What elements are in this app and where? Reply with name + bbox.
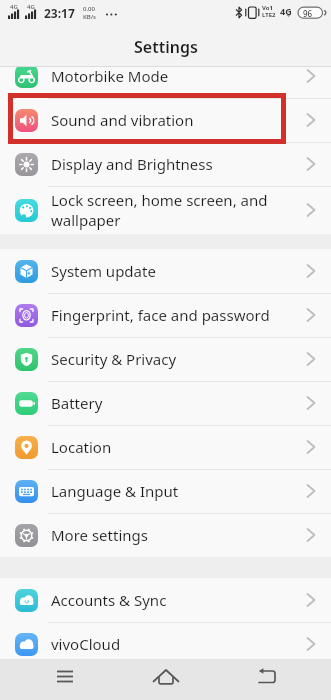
button[interactable]: Motorbike Mode bbox=[0, 54, 331, 98]
staticText: Vo1 bbox=[262, 4, 273, 12]
staticText: 96 bbox=[303, 8, 313, 19]
button[interactable]: Fingerprint, face and password bbox=[0, 293, 331, 337]
staticText: More settings bbox=[51, 525, 148, 545]
button[interactable] bbox=[236, 659, 296, 700]
staticText: 4G bbox=[10, 3, 18, 11]
staticText: Settings bbox=[134, 36, 198, 58]
button[interactable]: System update bbox=[0, 249, 331, 293]
staticText: vivoCloud bbox=[51, 634, 121, 654]
staticText: wallpaper bbox=[51, 210, 121, 230]
staticText: Sound and vibration bbox=[51, 110, 194, 130]
staticText: KB/s bbox=[83, 13, 96, 21]
staticText: Motorbike Mode bbox=[51, 66, 169, 86]
staticText: Accounts & Sync bbox=[51, 590, 167, 610]
staticText: 0.00 bbox=[83, 5, 95, 13]
staticText: Fingerprint, face and password bbox=[51, 305, 270, 325]
button[interactable]: Battery bbox=[0, 381, 331, 425]
button[interactable]: Sound and vibration bbox=[0, 98, 331, 142]
button[interactable]: Location bbox=[0, 425, 331, 469]
button[interactable]: Display and Brightness bbox=[0, 142, 331, 186]
button[interactable]: Lock screen, home screen, and bbox=[0, 186, 331, 234]
staticText: 4G bbox=[27, 3, 35, 11]
staticText: LTE2 bbox=[262, 11, 276, 19]
button[interactable]: Security & Privacy bbox=[0, 337, 331, 381]
button[interactable]: vivoCloud bbox=[0, 622, 331, 666]
button[interactable]: Language & Input bbox=[0, 469, 331, 513]
staticText: Location bbox=[51, 437, 112, 457]
staticText: Battery bbox=[51, 393, 103, 413]
button[interactable]: More settings bbox=[0, 513, 331, 557]
staticText: Security & Privacy bbox=[51, 349, 177, 369]
staticText: 23:17 bbox=[44, 5, 75, 21]
button[interactable]: Accounts & Sync bbox=[0, 578, 331, 622]
staticText: 4G bbox=[280, 5, 292, 17]
button[interactable] bbox=[35, 659, 95, 700]
staticText: Lock screen, home screen, and bbox=[51, 190, 268, 210]
staticText: Language & Input bbox=[51, 481, 179, 501]
staticText: Display and Brightness bbox=[51, 154, 213, 174]
staticText: System update bbox=[51, 261, 156, 281]
button[interactable] bbox=[136, 659, 196, 700]
